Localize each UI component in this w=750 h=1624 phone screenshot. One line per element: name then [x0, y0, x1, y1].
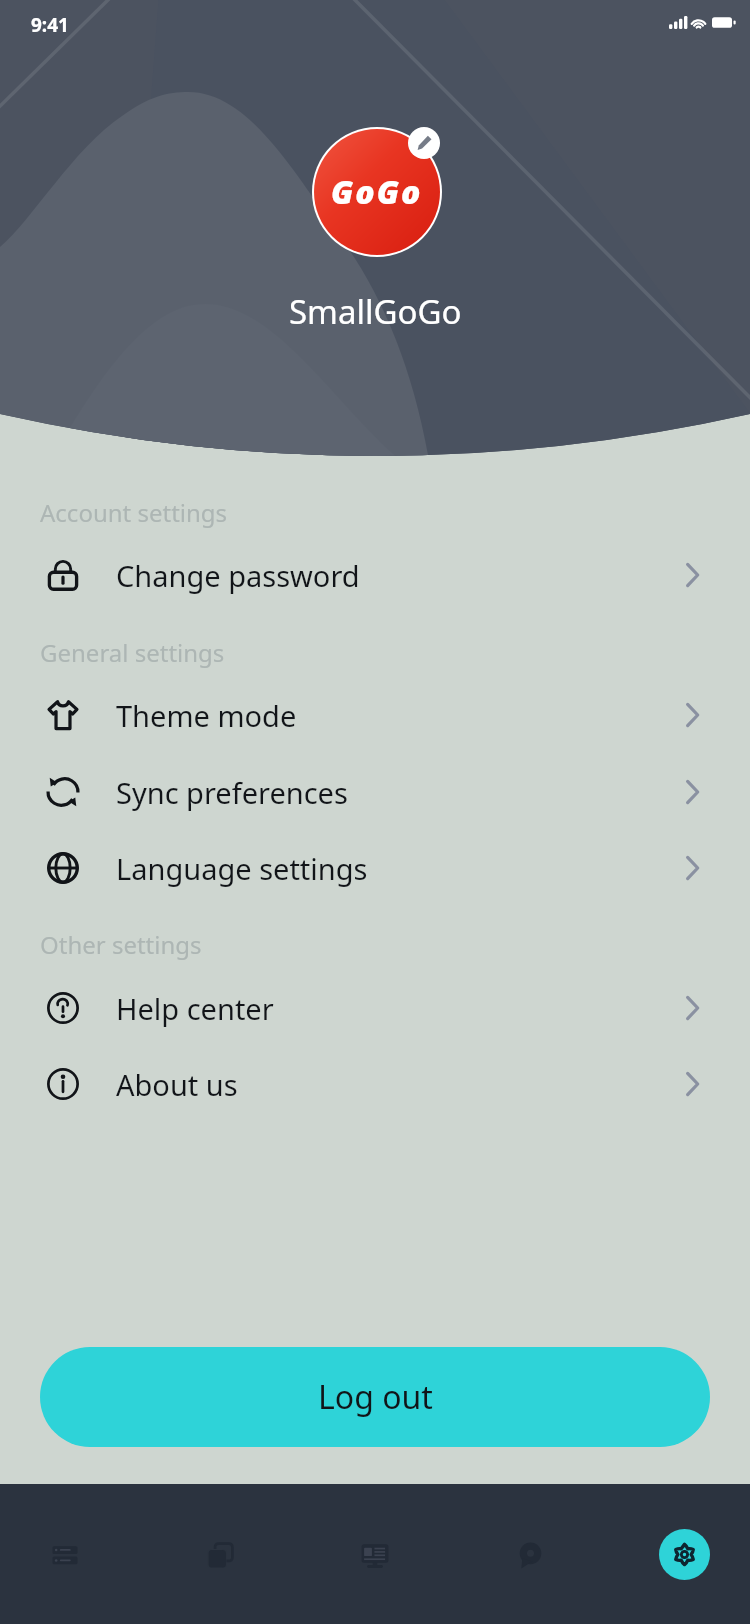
staticText: GoGo	[331, 170, 423, 214]
button[interactable]: Change password	[0, 537, 750, 613]
staticText: About us	[116, 1065, 238, 1104]
button[interactable]: Help center	[0, 970, 750, 1046]
staticText: General settings	[40, 636, 225, 669]
button[interactable]: Theme mode	[0, 677, 750, 753]
button[interactable]: About us	[0, 1046, 750, 1122]
staticText: SmallGoGo	[289, 289, 462, 334]
staticText: Log out	[318, 1375, 433, 1419]
button[interactable]: News	[339, 1519, 411, 1591]
staticText: Account settings	[40, 496, 228, 529]
staticText: Help center	[116, 989, 274, 1028]
button[interactable]: Language settings	[0, 830, 750, 906]
button[interactable]: Log out	[40, 1347, 710, 1447]
staticText: Other settings	[40, 928, 202, 961]
button[interactable]: Edit profile photo	[408, 127, 440, 159]
staticText: Theme mode	[116, 696, 297, 735]
staticText: 9:41	[31, 12, 69, 38]
button[interactable]: Settings	[659, 1529, 710, 1580]
button[interactable]: Sync preferences	[0, 754, 750, 830]
staticText: Change password	[116, 556, 360, 595]
staticText: Sync preferences	[116, 773, 348, 812]
button[interactable]: GoGo	[312, 127, 442, 257]
staticText: Language settings	[116, 849, 368, 888]
